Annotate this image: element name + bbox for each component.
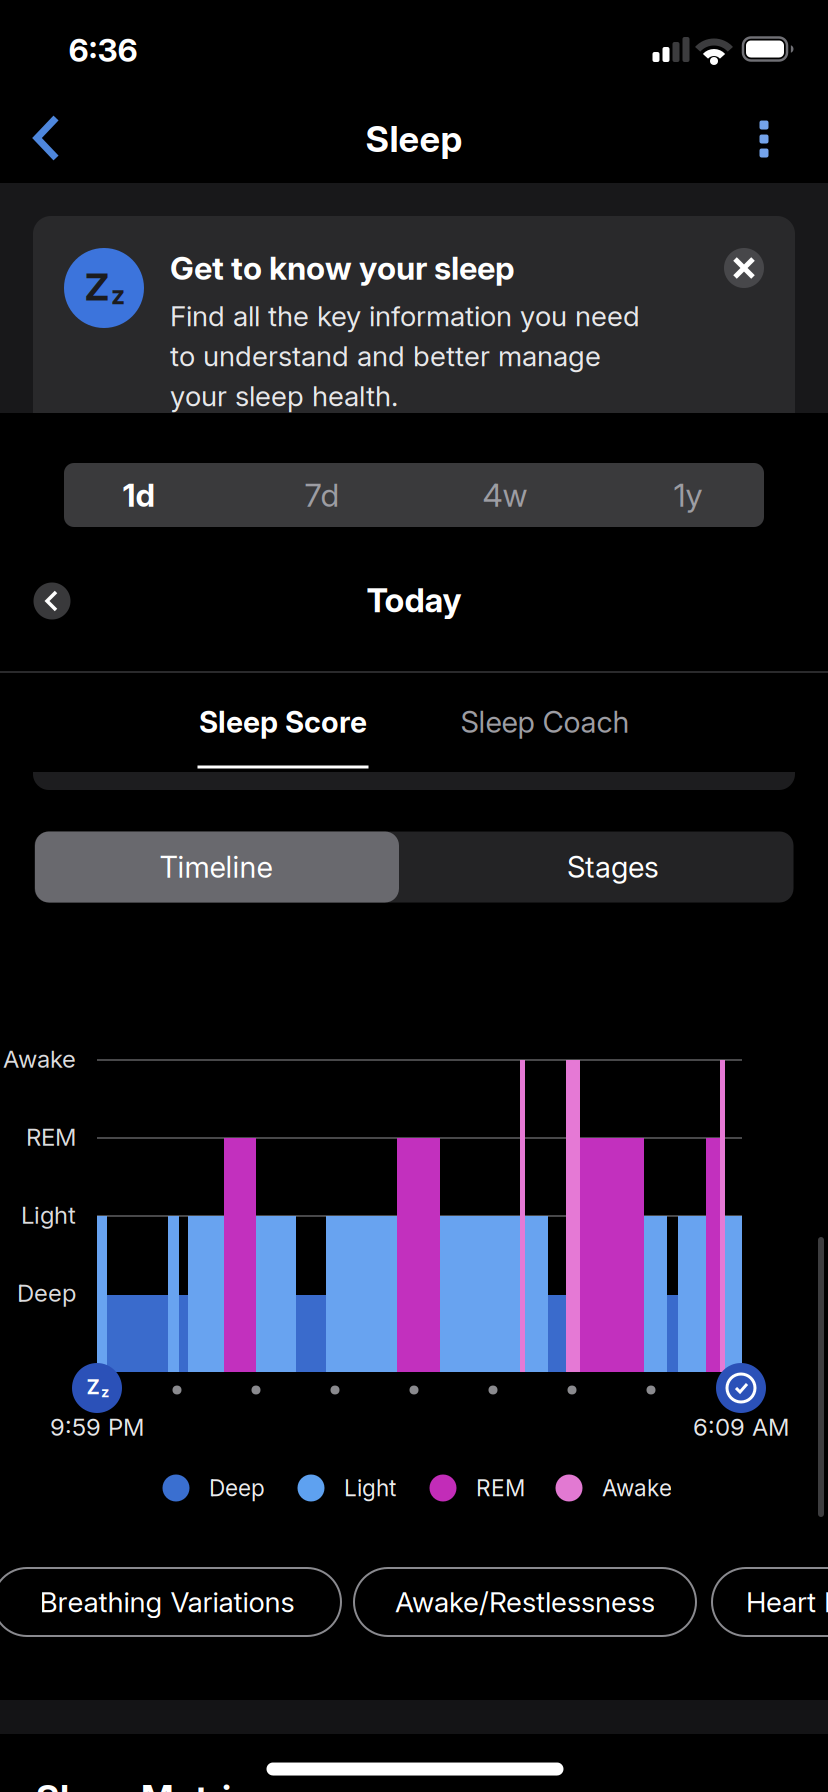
staticText: Light [21, 1201, 76, 1229]
staticText: Light [344, 1475, 396, 1501]
staticText: Sleep Metrics [36, 1777, 270, 1792]
staticText: Awake [602, 1475, 672, 1501]
staticText: to understand and better manage [170, 339, 601, 372]
staticText: Awake/Restlessness [395, 1585, 655, 1618]
button[interactable]: Awake/Restlessness [354, 1568, 696, 1636]
staticText: REM [476, 1475, 525, 1501]
button[interactable]: Sleep Score [175, 674, 391, 770]
button[interactable]: Timeline [35, 831, 399, 902]
staticText: Breathing Variations [39, 1585, 294, 1618]
button[interactable]: Previous day [33, 582, 71, 620]
button[interactable]: 1d [52, 463, 226, 527]
staticText: Get to know your sleep [170, 249, 515, 287]
staticText: Find all the key information you need [170, 299, 640, 332]
staticText: your sleep health. [170, 379, 398, 412]
staticText: Deep [17, 1279, 76, 1307]
staticText: Sleep [365, 118, 462, 160]
button[interactable]: Dismiss [724, 248, 764, 288]
staticText: 6:09 AM [693, 1413, 789, 1441]
staticText: 1d [122, 476, 155, 514]
button[interactable]: 4w [418, 463, 592, 527]
staticText: 9:59 PM [50, 1413, 144, 1441]
staticText: Timeline [159, 850, 272, 884]
staticText: Sleep Coach [460, 705, 629, 739]
staticText: Today [366, 580, 461, 620]
staticText: Z [86, 1375, 99, 1399]
staticText: Sleep Score [199, 705, 367, 739]
button[interactable]: Breathing Variations [0, 1568, 341, 1636]
staticText: Awake [3, 1045, 76, 1073]
staticText: REM [26, 1123, 76, 1151]
staticText: Z [85, 265, 109, 309]
button[interactable]: Stages [34, 831, 793, 902]
staticText: Deep [209, 1475, 265, 1501]
staticText: Stages [567, 850, 659, 884]
button[interactable]: Back [0, 99, 80, 179]
staticText: z [111, 280, 125, 310]
staticText: 1y [673, 476, 702, 514]
button[interactable]: Heart Rate Variations [712, 1568, 828, 1636]
staticText: z [101, 1383, 109, 1401]
staticText: Heart Rate Variations [746, 1585, 828, 1618]
button[interactable]: 1y [601, 463, 775, 527]
staticText: 4w [482, 476, 527, 514]
staticText: 7d [304, 476, 339, 514]
button[interactable]: Sleep Coach [437, 674, 653, 770]
button[interactable]: 7d [235, 463, 409, 527]
staticText: 6:36 [68, 31, 137, 69]
button[interactable]: More options [732, 107, 796, 171]
